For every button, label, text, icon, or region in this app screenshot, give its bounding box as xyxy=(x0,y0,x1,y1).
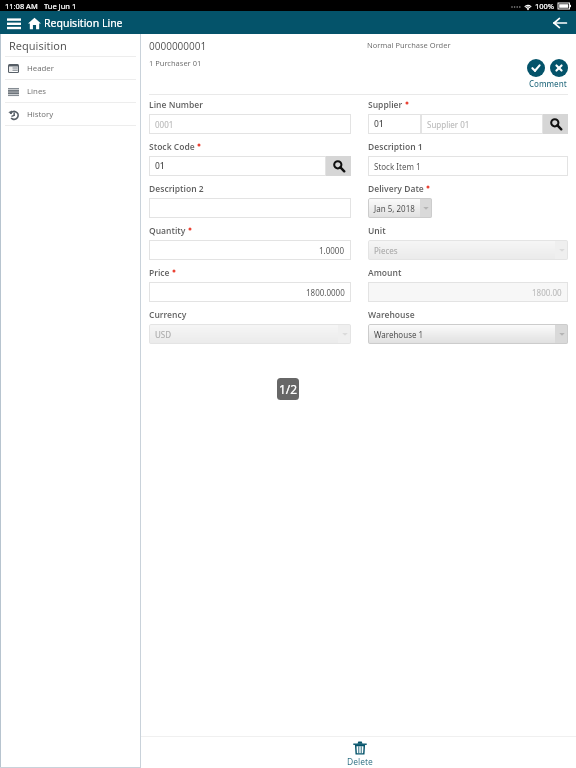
staticText: Delete xyxy=(347,756,373,768)
staticText: 0000000001 xyxy=(149,39,207,53)
button[interactable]: Delete xyxy=(331,737,389,768)
button[interactable]: Back xyxy=(550,13,570,33)
button[interactable]: Lines xyxy=(0,80,141,102)
staticText: Unit xyxy=(368,225,386,237)
button[interactable]: USD xyxy=(149,324,351,344)
button[interactable]: Page 1 of 2 xyxy=(277,378,299,400)
staticText: Tue Jun 1 xyxy=(44,1,77,11)
staticText: 1/2 xyxy=(279,381,298,397)
staticText: Stock Item 1 xyxy=(374,161,421,172)
button[interactable]: Header xyxy=(0,57,141,79)
button[interactable]: 1800.00 xyxy=(368,282,568,302)
staticText: Delivery Date xyxy=(368,183,424,195)
button[interactable]: Search supplier xyxy=(543,114,568,134)
staticText: Warehouse 1 xyxy=(374,329,424,340)
staticText: 0001 xyxy=(155,119,174,130)
staticText: Quantity xyxy=(149,225,186,237)
button[interactable] xyxy=(149,198,351,218)
staticText: Supplier xyxy=(368,99,403,111)
staticText: Price xyxy=(149,267,170,279)
staticText: Header xyxy=(27,63,54,74)
staticText: Comment xyxy=(529,78,567,89)
staticText: USD xyxy=(155,329,172,340)
staticText: 1800.0000 xyxy=(306,287,345,298)
staticText: 01 xyxy=(155,160,165,172)
button[interactable]: 01 xyxy=(368,114,421,134)
staticText: Currency xyxy=(149,309,187,321)
staticText: Line Number xyxy=(149,99,203,111)
staticText: Requisition Line xyxy=(44,16,123,30)
staticText: Warehouse xyxy=(368,309,415,321)
button[interactable]: Stock Item 1 xyxy=(368,156,568,176)
staticText: Pieces xyxy=(374,245,398,256)
staticText: 1 Purchaser 01 xyxy=(149,58,202,68)
staticText: Stock Code xyxy=(149,141,195,153)
staticText: Normal Purchase Order xyxy=(367,40,451,50)
button[interactable]: Pieces xyxy=(368,240,568,260)
button[interactable]: Home xyxy=(25,14,43,32)
staticText: Supplier 01 xyxy=(427,119,470,130)
staticText: 1800.00 xyxy=(532,287,562,298)
staticText: 01 xyxy=(374,118,384,130)
staticText: 100% xyxy=(535,1,555,11)
button[interactable]: Warehouse 1 xyxy=(368,324,568,344)
button[interactable]: 0001 xyxy=(149,114,351,134)
staticText: History xyxy=(27,109,54,120)
staticText: Description 2 xyxy=(149,183,204,195)
staticText: Requisition xyxy=(9,38,67,53)
button[interactable]: Menu xyxy=(5,14,23,32)
button[interactable]: 1800.0000 xyxy=(149,282,351,302)
button[interactable]: Supplier 01 xyxy=(421,114,543,134)
button[interactable]: Accept comment xyxy=(527,59,545,77)
staticText: Jan 5, 2018 xyxy=(374,203,415,214)
staticText: 1.0000 xyxy=(319,245,345,256)
staticText: Lines xyxy=(27,86,47,97)
staticText: Amount xyxy=(368,267,402,279)
button[interactable]: History xyxy=(0,103,141,125)
button[interactable]: Cancel comment xyxy=(550,59,568,77)
staticText: Description 1 xyxy=(368,141,423,153)
button[interactable]: 01 xyxy=(149,156,326,176)
button[interactable]: Jan 5, 2018 xyxy=(368,198,432,218)
button[interactable]: 1.0000 xyxy=(149,240,351,260)
staticText: 11:08 AM xyxy=(5,1,38,11)
button[interactable]: Search stock code xyxy=(326,156,351,176)
